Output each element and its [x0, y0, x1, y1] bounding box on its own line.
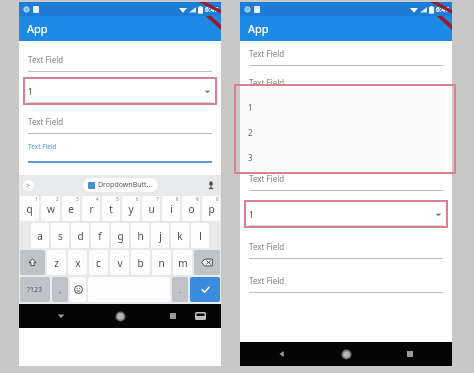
button[interactable]: v [110, 250, 129, 275]
staticText: w [47, 202, 55, 216]
staticText: i [170, 202, 173, 216]
button[interactable]: Text Field [249, 270, 443, 293]
staticText: DropdownButt... [98, 180, 153, 190]
button[interactable]: Text Field [249, 168, 443, 191]
staticText: t [109, 202, 113, 216]
staticText: a [37, 229, 43, 243]
button[interactable]: c [89, 250, 108, 275]
staticText: 9 [196, 196, 199, 202]
button[interactable]: r [82, 196, 100, 221]
button[interactable]: 1 [23, 77, 217, 105]
button[interactable]: 1 [234, 84, 456, 174]
staticText: App [248, 21, 269, 36]
button[interactable]: j [151, 223, 169, 248]
staticText: ?123 [27, 285, 43, 295]
button[interactable]: s [51, 223, 69, 248]
staticText: 6 [136, 196, 139, 202]
button[interactable]: DropdownButt... [83, 178, 158, 192]
staticText: 6:47 [205, 5, 218, 14]
staticText: d [77, 229, 84, 243]
button[interactable]: Enter [190, 277, 220, 302]
button[interactable]: k [171, 223, 189, 248]
staticText: 3 [76, 196, 79, 202]
button[interactable]: More suggestions [23, 180, 34, 191]
button[interactable]: h [131, 223, 149, 248]
button[interactable]: Home [113, 309, 127, 323]
staticText: . [179, 284, 182, 295]
button[interactable]: g [111, 223, 129, 248]
button[interactable]: Recents [404, 348, 416, 360]
button[interactable]: t [102, 196, 120, 221]
button[interactable]: Text Field [249, 72, 443, 95]
staticText: g [117, 229, 124, 243]
staticText: 6:47 [436, 5, 449, 14]
button[interactable]: l [191, 223, 209, 248]
button[interactable]: 1 [240, 95, 446, 120]
staticText: 1 [248, 102, 253, 113]
button[interactable]: 3 [240, 145, 446, 170]
button[interactable]: Shift [20, 250, 45, 275]
button[interactable]: a [31, 223, 49, 248]
button[interactable]: Recents [167, 310, 179, 322]
staticText: 3 [248, 152, 253, 163]
button[interactable]: 2 [240, 120, 446, 145]
button[interactable]: ?123 [20, 277, 50, 302]
button[interactable]: Home [339, 347, 353, 361]
button[interactable]: Voice input [206, 180, 216, 190]
staticText: Text Field [249, 48, 285, 59]
staticText: h [137, 229, 144, 243]
button[interactable]: u [142, 196, 160, 221]
staticText: p [208, 202, 215, 216]
button[interactable]: Emoji [70, 277, 86, 302]
staticText: z [54, 256, 59, 270]
staticText: Text Field [28, 142, 57, 151]
staticText: 2 [56, 196, 59, 202]
staticText: 0 [216, 196, 219, 202]
button[interactable]: d [71, 223, 89, 248]
staticText: , [59, 284, 62, 295]
button[interactable]: e [62, 196, 80, 221]
button[interactable]: Backspace [194, 250, 220, 275]
button[interactable]: Switch keyboard [193, 309, 207, 323]
staticText: k [177, 229, 183, 243]
staticText: s [58, 229, 63, 243]
staticText: 4 [96, 196, 99, 202]
staticText: n [158, 256, 165, 270]
staticText: u [148, 202, 155, 216]
button[interactable]: , [52, 277, 68, 302]
button[interactable]: y [122, 196, 140, 221]
button[interactable]: w [41, 196, 60, 221]
button[interactable]: o [182, 196, 200, 221]
button[interactable]: 1 [244, 200, 448, 228]
staticText: f [98, 229, 102, 243]
button[interactable]: b [131, 250, 150, 275]
button[interactable]: z [47, 250, 66, 275]
button[interactable]: i [162, 196, 180, 221]
button[interactable]: Text Field [249, 43, 443, 66]
button[interactable]: Text Field [28, 111, 212, 134]
button[interactable]: Text Field [249, 236, 443, 259]
staticText: Text Field [28, 116, 64, 127]
button[interactable]: x [68, 250, 87, 275]
staticText: Text Field [249, 77, 285, 88]
button[interactable]: Text Field [249, 137, 443, 160]
button[interactable]: m [173, 250, 192, 275]
button[interactable]: n [152, 250, 171, 275]
staticText: 1 [35, 196, 38, 202]
button[interactable]: Text Field [28, 138, 212, 163]
button[interactable]: q [20, 196, 39, 221]
staticText: m [178, 256, 188, 270]
staticText: q [26, 202, 33, 216]
staticText: 1 [249, 209, 254, 220]
button[interactable]: p [202, 196, 220, 221]
button[interactable]: . [172, 277, 188, 302]
button[interactable]: Text Field [28, 49, 212, 72]
staticText: Text Field [249, 173, 285, 184]
staticText: c [96, 256, 101, 270]
button[interactable]: Back [276, 348, 288, 360]
button[interactable]: f [91, 223, 109, 248]
button[interactable]: Hide keyboard [55, 310, 67, 322]
staticText: x [75, 256, 81, 270]
